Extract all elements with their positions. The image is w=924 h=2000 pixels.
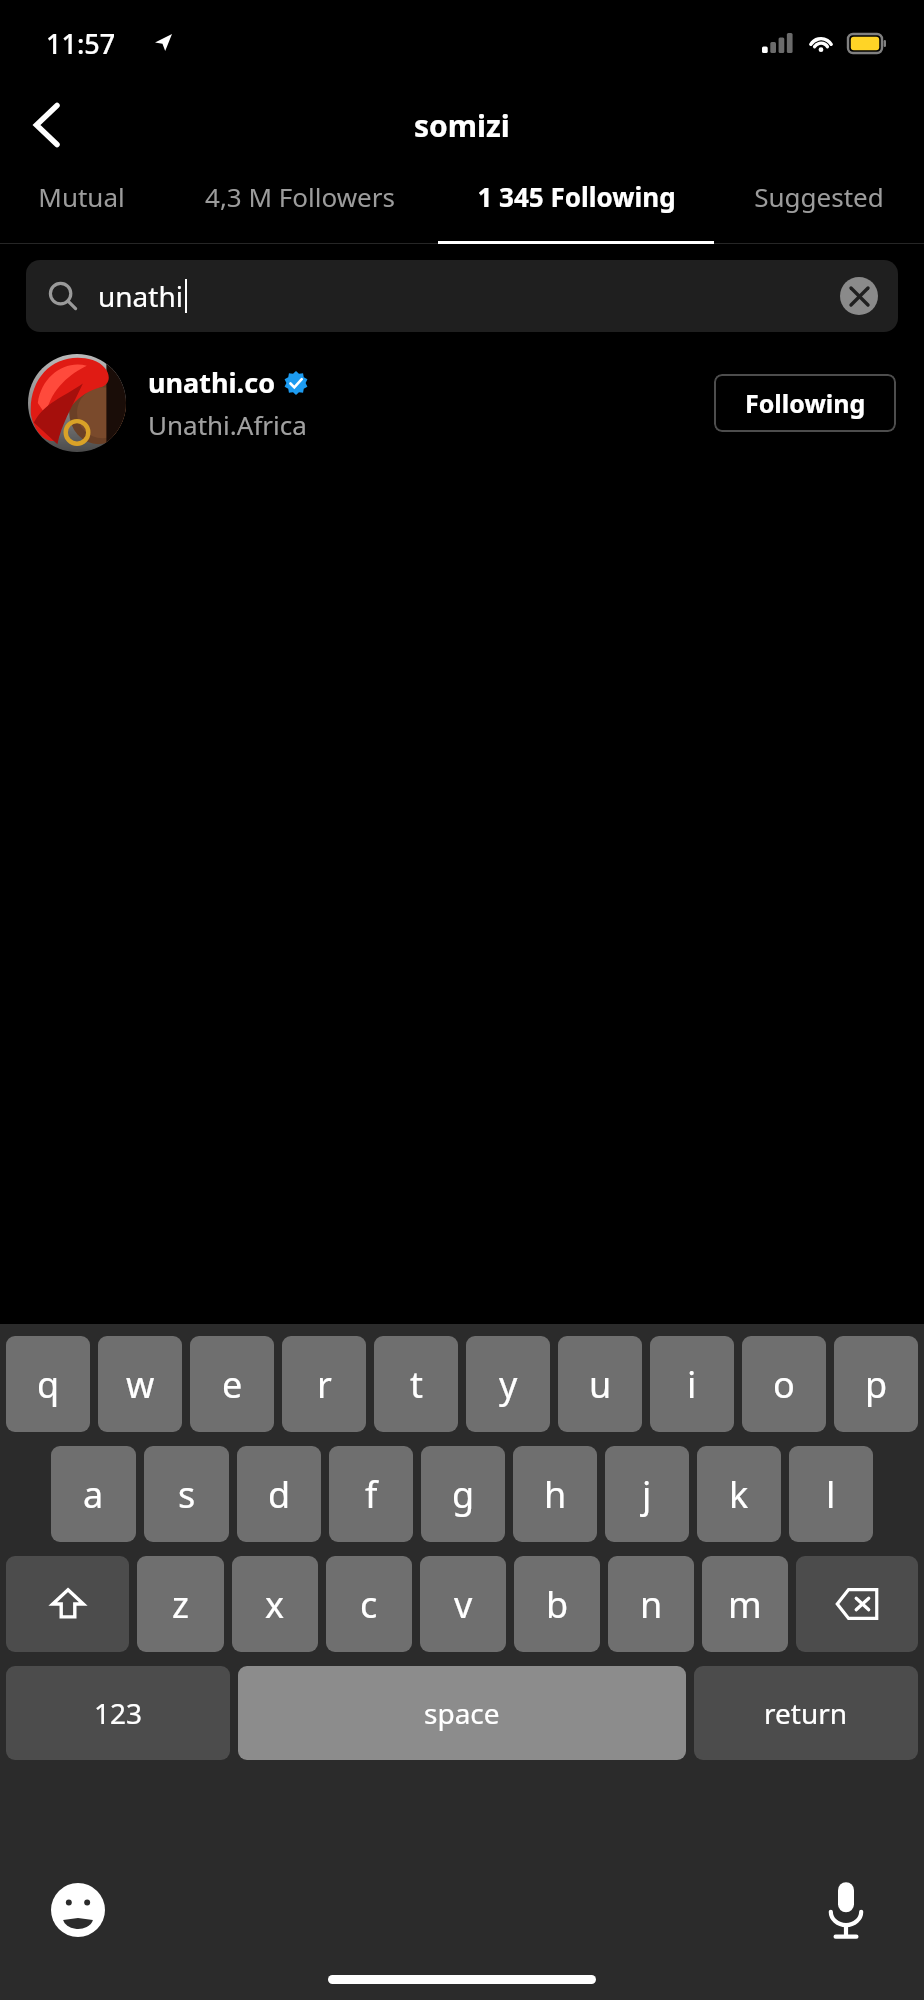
button[interactable]: h [513, 1446, 597, 1542]
button[interactable]: y [466, 1336, 550, 1432]
staticText: a [83, 1470, 104, 1519]
staticText: z [172, 1580, 189, 1629]
button[interactable]: unathi.co [0, 348, 924, 458]
button[interactable]: u [558, 1336, 642, 1432]
staticText: n [640, 1580, 663, 1629]
staticText: j [642, 1470, 652, 1519]
button[interactable]: z [137, 1556, 224, 1652]
staticText: l [826, 1470, 836, 1519]
button[interactable]: Clear [840, 277, 878, 315]
staticText: Unathi.Africa [148, 407, 307, 442]
staticText: o [773, 1360, 795, 1409]
button[interactable]: 123 [6, 1666, 230, 1760]
staticText: w [126, 1360, 155, 1409]
button[interactable]: a [51, 1446, 136, 1542]
staticText: k [729, 1470, 749, 1519]
button[interactable]: v [420, 1556, 506, 1652]
staticText: unathi.co [148, 364, 276, 401]
staticText: g [452, 1470, 475, 1519]
button[interactable]: o [742, 1336, 826, 1432]
staticText: unathi [98, 277, 183, 315]
button[interactable]: Mutual [0, 164, 162, 228]
staticText: return [764, 1694, 848, 1732]
staticText: x [265, 1580, 285, 1629]
staticText: f [365, 1470, 378, 1519]
button[interactable]: Following [714, 374, 896, 432]
staticText: somizi [414, 105, 510, 146]
staticText: v [454, 1580, 473, 1629]
button[interactable]: f [329, 1446, 413, 1542]
button[interactable]: r [282, 1336, 366, 1432]
button[interactable]: p [834, 1336, 918, 1432]
button[interactable]: i [650, 1336, 734, 1432]
button[interactable]: j [605, 1446, 689, 1542]
button[interactable]: t [374, 1336, 458, 1432]
button[interactable]: Dictate [814, 1878, 878, 1942]
button[interactable]: g [421, 1446, 505, 1542]
staticText: y [499, 1360, 518, 1409]
button[interactable]: Suggested [714, 164, 924, 228]
staticText: 11:57 [46, 25, 116, 62]
staticText: t [410, 1360, 423, 1409]
staticText: m [728, 1580, 762, 1629]
staticText: u [589, 1360, 612, 1409]
staticText: 4,3 M Followers [205, 179, 395, 214]
button[interactable]: Emoji [46, 1878, 110, 1942]
staticText: Following [745, 386, 866, 420]
button[interactable]: space [238, 1666, 686, 1760]
button[interactable]: e [190, 1336, 274, 1432]
button[interactable]: n [608, 1556, 694, 1652]
button[interactable]: c [326, 1556, 412, 1652]
staticText: d [268, 1470, 291, 1519]
button[interactable]: q [6, 1336, 90, 1432]
staticText: q [37, 1360, 60, 1409]
button[interactable]: 4,3 M Followers [162, 164, 438, 228]
staticText: e [222, 1360, 243, 1409]
button[interactable]: d [237, 1446, 321, 1542]
button[interactable]: return [694, 1666, 918, 1760]
staticText: Mutual [38, 179, 125, 214]
button[interactable]: l [789, 1446, 873, 1542]
button[interactable]: Back [16, 95, 76, 155]
button[interactable]: b [514, 1556, 600, 1652]
button[interactable]: unathi [26, 260, 898, 332]
staticText: c [360, 1580, 378, 1629]
button[interactable]: k [697, 1446, 781, 1542]
staticText: h [544, 1470, 567, 1519]
staticText: r [317, 1360, 332, 1409]
button[interactable]: s [144, 1446, 229, 1542]
staticText: i [687, 1360, 697, 1409]
button[interactable]: m [702, 1556, 788, 1652]
staticText: space [424, 1694, 500, 1732]
button[interactable]: w [98, 1336, 182, 1432]
button[interactable]: 1 345 Following [438, 164, 714, 228]
staticText: 123 [94, 1694, 143, 1732]
staticText: s [178, 1470, 196, 1519]
button[interactable]: Backspace [796, 1556, 918, 1652]
button[interactable]: x [232, 1556, 318, 1652]
staticText: b [546, 1580, 569, 1629]
button[interactable]: Shift [6, 1556, 129, 1652]
staticText: p [865, 1360, 888, 1409]
staticText: Suggested [754, 179, 884, 214]
staticText: 1 345 Following [477, 179, 676, 214]
